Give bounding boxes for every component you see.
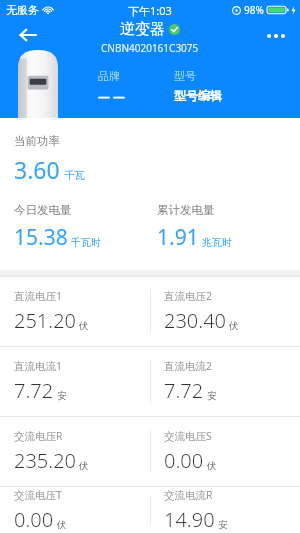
staticText: 14.90 — [164, 506, 215, 533]
button[interactable]: 交流电压S — [150, 417, 300, 486]
staticText: 累计发电量 — [157, 203, 215, 217]
staticText: 230.40 — [164, 307, 226, 334]
staticText: 直流电压1 — [14, 289, 63, 303]
staticText: 伏 — [79, 460, 89, 472]
staticText: 下午1:03 — [128, 3, 172, 18]
button[interactable]: More options — [256, 22, 296, 50]
staticText: 千瓦 — [64, 169, 85, 182]
staticText: 0.00 — [14, 506, 54, 533]
staticText: 安 — [207, 390, 217, 402]
staticText: 安 — [218, 519, 228, 531]
staticText: 98% — [244, 3, 264, 17]
staticText: 型号 — [174, 69, 196, 83]
staticText: 直流电流2 — [164, 359, 213, 373]
staticText: 当前功率 — [14, 134, 60, 148]
staticText: 1.91 — [157, 223, 199, 252]
staticText: 伏 — [207, 460, 217, 472]
staticText: 今日发电量 — [14, 203, 72, 217]
staticText: 251.20 — [14, 307, 76, 334]
staticText: 逆变器 — [120, 20, 165, 39]
staticText: CNBN4020161C3075 — [101, 41, 199, 55]
staticText: 直流电压2 — [164, 289, 213, 303]
staticText: 兆瓦时 — [202, 236, 232, 249]
staticText: 品牌 — [98, 69, 120, 83]
staticText: 型号编辑 — [174, 88, 222, 103]
button[interactable]: 直流电压2 — [150, 277, 300, 346]
staticText: 交流电压T — [14, 488, 62, 502]
staticText: — — — [98, 88, 126, 104]
staticText: 伏 — [57, 519, 67, 531]
staticText: 0.00 — [164, 447, 204, 474]
button[interactable]: 直流电流1 — [0, 347, 150, 416]
button[interactable]: 交流电压T — [0, 487, 150, 533]
button[interactable]: 型号 — [174, 69, 222, 103]
staticText: 直流电流1 — [14, 359, 63, 373]
staticText: 无服务 — [6, 3, 39, 17]
staticText: 伏 — [229, 320, 239, 332]
button[interactable]: 直流电流2 — [150, 347, 300, 416]
button[interactable]: 交流电压R — [0, 417, 150, 486]
staticText: 7.72 — [14, 377, 54, 404]
staticText: 伏 — [79, 320, 89, 332]
staticText: 3.60 — [14, 154, 60, 185]
staticText: 交流电压S — [164, 429, 212, 443]
button[interactable]: 交流电流R — [150, 487, 300, 533]
staticText: 交流电流R — [164, 488, 213, 502]
staticText: 安 — [57, 390, 67, 402]
button[interactable]: Back — [6, 20, 50, 50]
staticText: 235.20 — [14, 447, 76, 474]
staticText: 交流电压R — [14, 429, 63, 443]
button[interactable]: 直流电压1 — [0, 277, 150, 346]
staticText: 7.72 — [164, 377, 204, 404]
staticText: 15.38 — [14, 223, 68, 252]
staticText: 千瓦时 — [71, 236, 101, 249]
